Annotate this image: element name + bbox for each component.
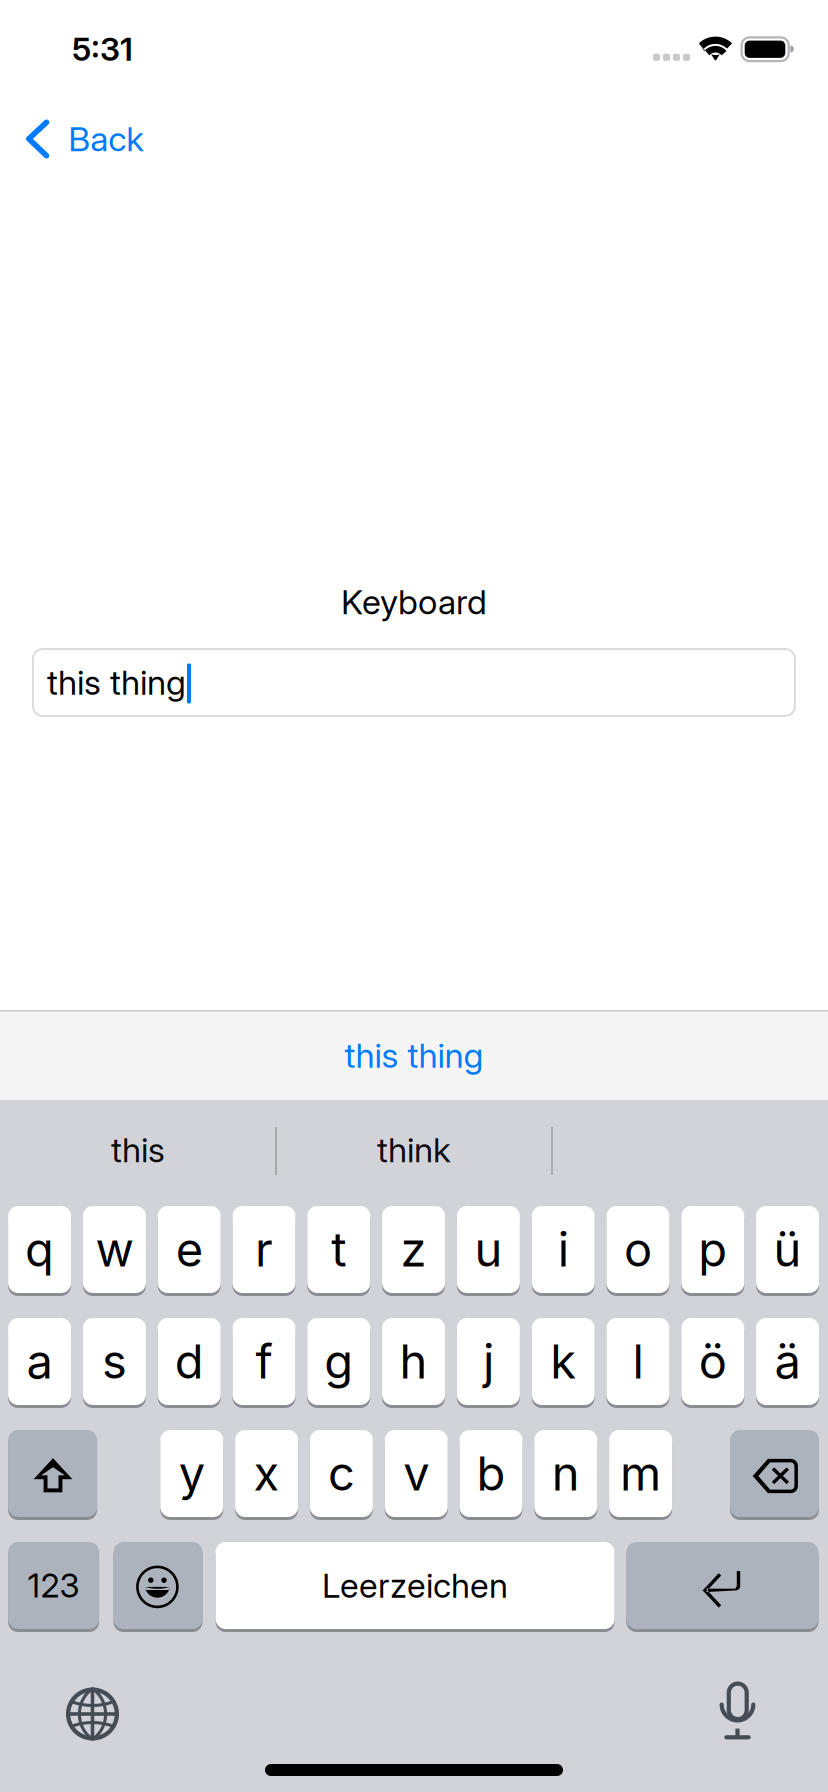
button[interactable]: h — [382, 1318, 445, 1408]
staticText: s — [102, 1333, 127, 1390]
button[interactable]: g — [307, 1318, 370, 1408]
staticText: ä — [775, 1333, 801, 1390]
button[interactable]: Shift — [8, 1430, 97, 1520]
button[interactable]: c — [310, 1430, 373, 1520]
staticText: a — [27, 1333, 53, 1390]
button[interactable]: Next keyboard — [37, 1659, 147, 1769]
button[interactable]: k — [532, 1318, 595, 1408]
button[interactable]: j — [457, 1318, 520, 1408]
staticText: Back — [68, 118, 144, 159]
button[interactable]: r — [232, 1206, 295, 1296]
staticText: u — [474, 1221, 502, 1278]
button[interactable]: l — [606, 1318, 669, 1408]
staticText: w — [95, 1221, 133, 1278]
button[interactable]: o — [606, 1206, 669, 1296]
button[interactable]: z — [382, 1206, 445, 1296]
button[interactable]: 123 — [8, 1542, 99, 1632]
staticText: n — [552, 1445, 580, 1502]
button[interactable]: Dictation — [682, 1656, 792, 1766]
button[interactable]: this thing — [0, 1011, 828, 1100]
staticText: g — [324, 1333, 353, 1390]
staticText: this thing — [47, 662, 186, 703]
button[interactable]: m — [609, 1430, 672, 1520]
staticText: this — [111, 1129, 165, 1170]
button[interactable]: a — [8, 1318, 71, 1408]
staticText: k — [550, 1333, 576, 1390]
staticText: this thing — [344, 1035, 483, 1076]
button[interactable]: t — [307, 1206, 370, 1296]
button[interactable]: think — [276, 1100, 552, 1200]
staticText: Leerzeichen — [322, 1565, 508, 1606]
button[interactable]: x — [235, 1430, 298, 1520]
button[interactable]: Delete — [730, 1430, 819, 1520]
staticText: f — [255, 1333, 272, 1390]
staticText: 123 — [28, 1565, 80, 1605]
button[interactable]: e — [158, 1206, 221, 1296]
button[interactable]: y — [160, 1430, 223, 1520]
staticText: ö — [699, 1333, 727, 1390]
button[interactable]: f — [232, 1318, 295, 1408]
staticText: r — [255, 1221, 273, 1278]
staticText: t — [331, 1221, 346, 1278]
button[interactable]: i — [532, 1206, 595, 1296]
button[interactable]: w — [83, 1206, 146, 1296]
staticText: p — [698, 1221, 727, 1278]
button[interactable]: q — [8, 1206, 71, 1296]
button[interactable]: Emoji — [113, 1542, 202, 1632]
button[interactable]: this — [0, 1100, 276, 1200]
button[interactable]: u — [457, 1206, 520, 1296]
staticText: x — [254, 1445, 280, 1502]
staticText: y — [179, 1445, 205, 1502]
staticText: think — [377, 1129, 451, 1170]
button[interactable]: ö — [681, 1318, 744, 1408]
staticText: Keyboard — [341, 581, 487, 622]
button[interactable]: v — [385, 1430, 448, 1520]
staticText: 5:31 — [72, 30, 133, 68]
button[interactable]: p — [681, 1206, 744, 1296]
staticText: z — [401, 1221, 427, 1278]
staticText: i — [558, 1221, 569, 1278]
staticText: h — [400, 1333, 428, 1390]
staticText: l — [632, 1333, 643, 1390]
button[interactable]: ü — [756, 1206, 819, 1296]
staticText: q — [25, 1221, 54, 1278]
button[interactable]: n — [534, 1430, 597, 1520]
button[interactable]: b — [459, 1430, 522, 1520]
button[interactable]: ä — [756, 1318, 819, 1408]
staticText: c — [328, 1445, 355, 1502]
staticText: m — [620, 1445, 661, 1502]
staticText: j — [483, 1333, 494, 1390]
staticText: b — [476, 1445, 505, 1502]
button[interactable]: s — [83, 1318, 146, 1408]
button[interactable]: this thing — [33, 649, 795, 716]
button[interactable]: Back — [6, 91, 166, 187]
staticText: v — [403, 1445, 429, 1502]
button[interactable]: d — [158, 1318, 221, 1408]
staticText: o — [624, 1221, 652, 1278]
staticText: d — [175, 1333, 204, 1390]
staticText: e — [176, 1221, 203, 1278]
button[interactable]: Return — [626, 1542, 818, 1632]
button[interactable]: Leerzeichen — [216, 1542, 615, 1632]
staticText: ü — [774, 1221, 802, 1278]
